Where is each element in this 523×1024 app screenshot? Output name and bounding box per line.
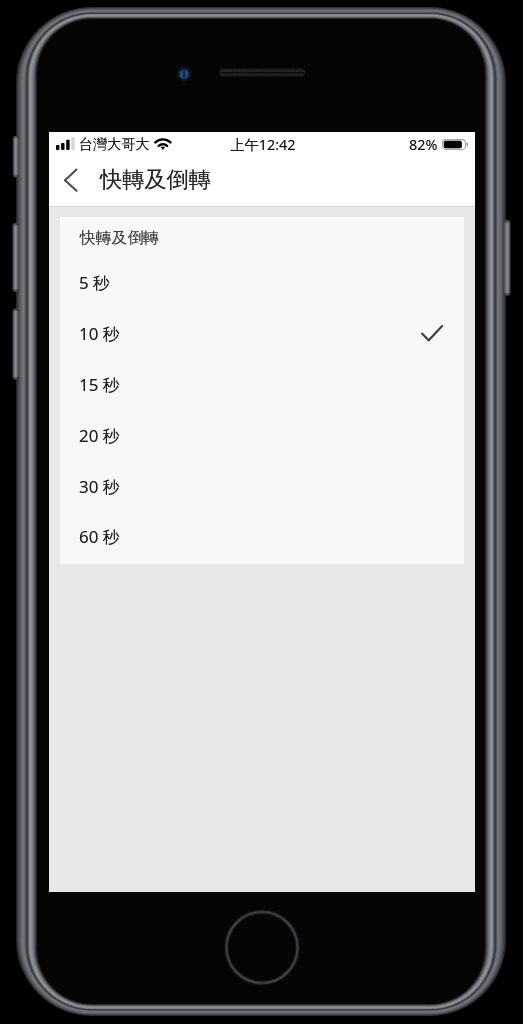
staticText: 台灣大哥大 bbox=[79, 135, 150, 153]
button[interactable]: 5 秒 bbox=[60, 257, 464, 308]
button[interactable]: 60 秒 bbox=[60, 511, 464, 562]
staticText: 10 秒 bbox=[79, 322, 120, 345]
staticText: 5 秒 bbox=[79, 271, 110, 294]
button[interactable]: 10 秒 bbox=[60, 308, 464, 359]
staticText: 台灣大哥大 bbox=[79, 135, 150, 153]
button[interactable]: 15 秒 bbox=[60, 359, 464, 410]
staticText: 上午12:42 bbox=[230, 135, 296, 155]
staticText: 15 秒 bbox=[79, 373, 120, 396]
staticText: 快轉及倒轉 bbox=[100, 166, 211, 194]
button[interactable]: 30 秒 bbox=[60, 461, 464, 512]
staticText: 快轉及倒轉 bbox=[80, 228, 159, 248]
staticText: 60 秒 bbox=[79, 525, 120, 548]
button[interactable]: 20 秒 bbox=[60, 410, 464, 461]
staticText: 60 秒 bbox=[79, 525, 120, 548]
button[interactable]: Back bbox=[51, 162, 91, 207]
staticText: 5 秒 bbox=[79, 271, 110, 294]
staticText: 82% bbox=[409, 135, 438, 155]
staticText: 82% bbox=[409, 135, 438, 155]
staticText: 快轉及倒轉 bbox=[80, 228, 159, 248]
staticText: 快轉及倒轉 bbox=[100, 166, 211, 194]
staticText: 30 秒 bbox=[79, 475, 120, 498]
staticText: 30 秒 bbox=[79, 475, 120, 498]
staticText: 15 秒 bbox=[79, 373, 120, 396]
staticText: 20 秒 bbox=[79, 424, 120, 447]
staticText: 10 秒 bbox=[79, 322, 120, 345]
staticText: 上午12:42 bbox=[230, 135, 296, 155]
staticText: 20 秒 bbox=[79, 424, 120, 447]
